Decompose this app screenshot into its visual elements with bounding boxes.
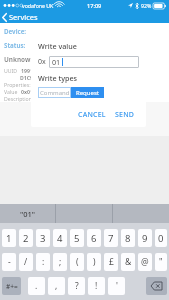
- button[interactable]: /: [19, 253, 33, 271]
- staticText: .: [35, 280, 38, 292]
- button[interactable]: (: [70, 253, 84, 271]
- button[interactable]: Back: [0, 11, 42, 23]
- staticText: Request: [76, 89, 99, 97]
- button[interactable]: :: [36, 253, 50, 271]
- staticText: 0x01: [21, 88, 33, 95]
- button[interactable]: Request: [71, 87, 104, 98]
- staticText: Properties: Read Write: [4, 81, 59, 88]
- staticText: 4: [57, 232, 63, 245]
- button[interactable]: @: [138, 253, 152, 271]
- button[interactable]: 01: [49, 56, 139, 68]
- staticText: &: [125, 256, 132, 268]
- button[interactable]: 2: [19, 229, 33, 247]
- button[interactable]: Symbols: [2, 277, 21, 295]
- button[interactable]: !: [88, 277, 105, 295]
- button[interactable]: ": [155, 253, 167, 271]
- staticText: ): [93, 256, 96, 268]
- button[interactable]: "01": [0, 204, 55, 223]
- staticText: Status:: [4, 41, 26, 49]
- staticText: Write types: [38, 73, 78, 83]
- staticText: :: [42, 256, 45, 268]
- button[interactable]: 5: [70, 229, 84, 247]
- staticText: 2: [23, 232, 29, 245]
- button[interactable]: CANCEL: [75, 108, 109, 122]
- staticText: 0x: [38, 57, 46, 67]
- staticText: ;: [59, 256, 62, 268]
- button[interactable]: ': [108, 277, 125, 295]
- staticText: SEND: [115, 110, 135, 120]
- staticText: £: [109, 256, 114, 268]
- staticText: -: [8, 256, 11, 268]
- staticText: ': [116, 280, 118, 292]
- staticText: Write value: [38, 41, 77, 51]
- staticText: /: [24, 256, 28, 268]
- button[interactable]: ;: [53, 253, 67, 271]
- staticText: #+=: [6, 282, 18, 291]
- staticText: 0: [158, 232, 164, 245]
- staticText: Value: [4, 88, 18, 95]
- staticText: 17:09: [87, 2, 102, 10]
- button[interactable]: 8: [121, 229, 135, 247]
- staticText: 1991B3C0-: [21, 67, 48, 74]
- button[interactable]: -: [2, 253, 16, 271]
- button[interactable]: 3: [36, 229, 50, 247]
- button[interactable]: 0: [155, 229, 167, 247]
- button[interactable]: £: [104, 253, 118, 271]
- staticText: Command: [40, 89, 70, 97]
- staticText: Services: [9, 12, 38, 22]
- staticText: Device:: [4, 27, 27, 35]
- staticText: 1: [6, 232, 12, 245]
- button[interactable]: Command: [38, 87, 71, 98]
- staticText: 8: [125, 232, 131, 245]
- staticText: D1C9-: [20, 74, 35, 81]
- staticText: "01": [20, 209, 36, 219]
- staticText: @: [141, 256, 149, 268]
- staticText: 01: [52, 57, 61, 67]
- button[interactable]: 1: [2, 229, 16, 247]
- button[interactable]: ,: [48, 277, 65, 295]
- staticText: 3: [40, 232, 46, 245]
- button[interactable]: SEND: [112, 108, 138, 122]
- staticText: 7: [108, 232, 114, 245]
- staticText: 5: [74, 232, 80, 245]
- staticText: vodafone UK: [22, 2, 54, 9]
- staticText: Description:: [4, 95, 34, 102]
- button[interactable]: ?: [68, 277, 85, 295]
- button[interactable]: 4: [53, 229, 67, 247]
- button[interactable]: ): [87, 253, 101, 271]
- staticText: 9: [142, 232, 148, 245]
- staticText: !: [95, 280, 98, 292]
- staticText: ?: [75, 280, 79, 292]
- button[interactable]: Backspace: [146, 277, 167, 295]
- staticText: Unknown Characteristic: [4, 55, 81, 64]
- button[interactable]: &: [121, 253, 135, 271]
- staticText: (: [76, 256, 79, 268]
- button[interactable]: .: [28, 277, 45, 295]
- staticText: CANCEL: [78, 110, 106, 120]
- other: Back: [2, 13, 7, 22]
- staticText: ": [159, 256, 163, 268]
- staticText: 92%: [141, 2, 152, 9]
- staticText: UUID: [4, 67, 18, 74]
- staticText: ,: [55, 280, 58, 292]
- button[interactable]: 6: [87, 229, 101, 247]
- button[interactable]: 9: [138, 229, 152, 247]
- button[interactable]: 7: [104, 229, 118, 247]
- staticText: 6: [91, 232, 97, 245]
